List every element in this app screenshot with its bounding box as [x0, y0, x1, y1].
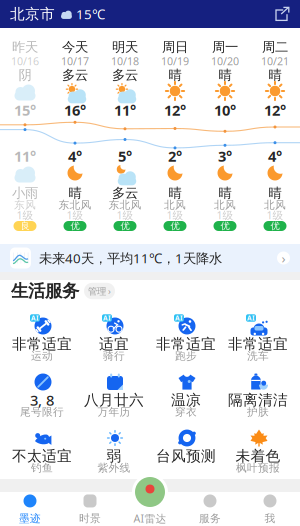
staticText: 钓鱼 — [31, 461, 53, 474]
staticText: 今天 — [62, 39, 88, 55]
staticText: 优 — [70, 220, 79, 232]
staticText: 优 — [170, 220, 179, 232]
staticText: 东北风 — [58, 198, 91, 211]
staticText: AI — [175, 314, 183, 322]
staticText: 1级 — [216, 208, 233, 222]
staticText: 东北风 — [108, 198, 141, 211]
staticText: 昨天 — [12, 39, 38, 55]
button[interactable]: 未来40天，平均11℃，1天降水 — [0, 244, 300, 272]
staticText: 未来40天，平均11℃，1天降水 — [39, 249, 222, 267]
staticText: 良 — [20, 220, 29, 232]
staticText: 1级 — [166, 208, 183, 222]
staticText: 10/16 — [11, 54, 39, 68]
staticText: 优 — [270, 220, 279, 232]
staticText: 晴 — [218, 67, 231, 83]
staticText: 北风 — [214, 198, 236, 211]
staticText: 晴 — [268, 185, 281, 201]
staticText: 周一 — [212, 39, 238, 55]
staticText: 1级 — [66, 208, 83, 222]
button[interactable]: 墨迹 — [0, 492, 60, 526]
staticText: 10/17 — [61, 54, 89, 68]
button[interactable]: AI — [222, 313, 294, 365]
staticText: 10/21 — [261, 54, 289, 68]
button[interactable]: 不太适宜 — [6, 425, 78, 477]
staticText: 10/20 — [211, 54, 239, 68]
button[interactable]: 3, 8 — [6, 369, 78, 421]
staticText: 护肤 — [247, 405, 269, 418]
staticText: 非常适宜 — [228, 335, 288, 353]
staticText: 非常适宜 — [12, 335, 72, 353]
staticText: 我 — [264, 512, 275, 525]
staticText: 墨迹 — [19, 512, 41, 525]
staticText: 隔离清洁 — [228, 391, 288, 409]
button[interactable]: 管理 › — [84, 283, 115, 299]
staticText: 非常适宜 — [156, 335, 216, 353]
staticText: 优 — [120, 220, 129, 232]
staticText: 11° — [114, 100, 136, 120]
staticText: 15℃ — [76, 5, 105, 23]
staticText: 时景 — [79, 512, 101, 525]
staticText: 多云 — [112, 185, 138, 201]
staticText: AI — [103, 314, 111, 322]
button[interactable]: AI — [78, 313, 150, 365]
button[interactable]: 八月廿六 — [78, 369, 150, 421]
staticText: 东风 — [14, 198, 36, 211]
button[interactable]: 服务 — [180, 492, 240, 526]
button[interactable]: 时景 — [60, 492, 120, 526]
button[interactable]: 弱 — [78, 425, 150, 477]
staticText: AI雷达 — [133, 511, 166, 526]
staticText: 北京市 — [10, 5, 55, 23]
button[interactable]: AI雷达 — [120, 492, 180, 526]
staticText: 10/19 — [161, 54, 189, 68]
staticText: 管理 › — [88, 285, 111, 297]
staticText: 10° — [214, 100, 236, 120]
staticText: 洗车 — [247, 349, 269, 362]
staticText: 生活服务 — [11, 280, 79, 302]
staticText: 北风 — [264, 198, 286, 211]
staticText: 穿衣 — [175, 405, 197, 418]
staticText: 不太适宜 — [12, 447, 72, 465]
staticText: 1级 — [266, 208, 283, 222]
staticText: 周二 — [262, 39, 288, 55]
staticText: 多云 — [112, 67, 138, 83]
staticText: 3° — [218, 146, 232, 166]
staticText: 骑行 — [103, 349, 125, 362]
staticText: 2° — [168, 146, 182, 166]
staticText: 1级 — [116, 208, 133, 222]
staticText: 八月廿六 — [84, 391, 144, 409]
staticText: 优 — [220, 220, 229, 232]
staticText: 台风预测 — [156, 447, 216, 465]
staticText: 12° — [164, 100, 186, 120]
staticText: 服务 — [199, 512, 221, 525]
staticText: 晴 — [68, 185, 81, 201]
button[interactable]: AI — [150, 313, 222, 365]
button[interactable]: 隔离清洁 — [222, 369, 294, 421]
staticText: 阴 — [18, 67, 31, 83]
staticText: 晴 — [268, 67, 281, 83]
staticText: 多云 — [62, 67, 88, 83]
button[interactable]: 台风预测 — [150, 425, 222, 477]
staticText: 12° — [264, 100, 286, 120]
staticText: 11° — [14, 146, 36, 166]
staticText: 枫叶预报 — [236, 461, 280, 474]
button[interactable]: 温凉 — [150, 369, 222, 421]
button[interactable]: 未着色 — [222, 425, 294, 477]
staticText: 运动 — [31, 349, 53, 362]
staticText: 跑步 — [175, 349, 197, 362]
staticText: › — [281, 249, 285, 267]
staticText: 4° — [68, 146, 82, 166]
staticText: 温凉 — [171, 391, 201, 409]
staticText: 紫外线 — [97, 461, 130, 474]
button[interactable]: 我 — [240, 492, 300, 526]
staticText: 小雨 — [12, 185, 38, 201]
staticText: 适宜 — [99, 335, 129, 353]
button[interactable]: AI — [6, 313, 78, 365]
staticText: 北风 — [164, 198, 186, 211]
staticText: 15° — [14, 100, 36, 120]
button[interactable]: 分享 — [274, 6, 290, 22]
staticText: 10/18 — [111, 54, 139, 68]
staticText: 周日 — [162, 39, 188, 55]
staticText: 16° — [64, 100, 86, 120]
staticText: 未着色 — [235, 447, 280, 465]
staticText: 弱 — [106, 447, 121, 465]
